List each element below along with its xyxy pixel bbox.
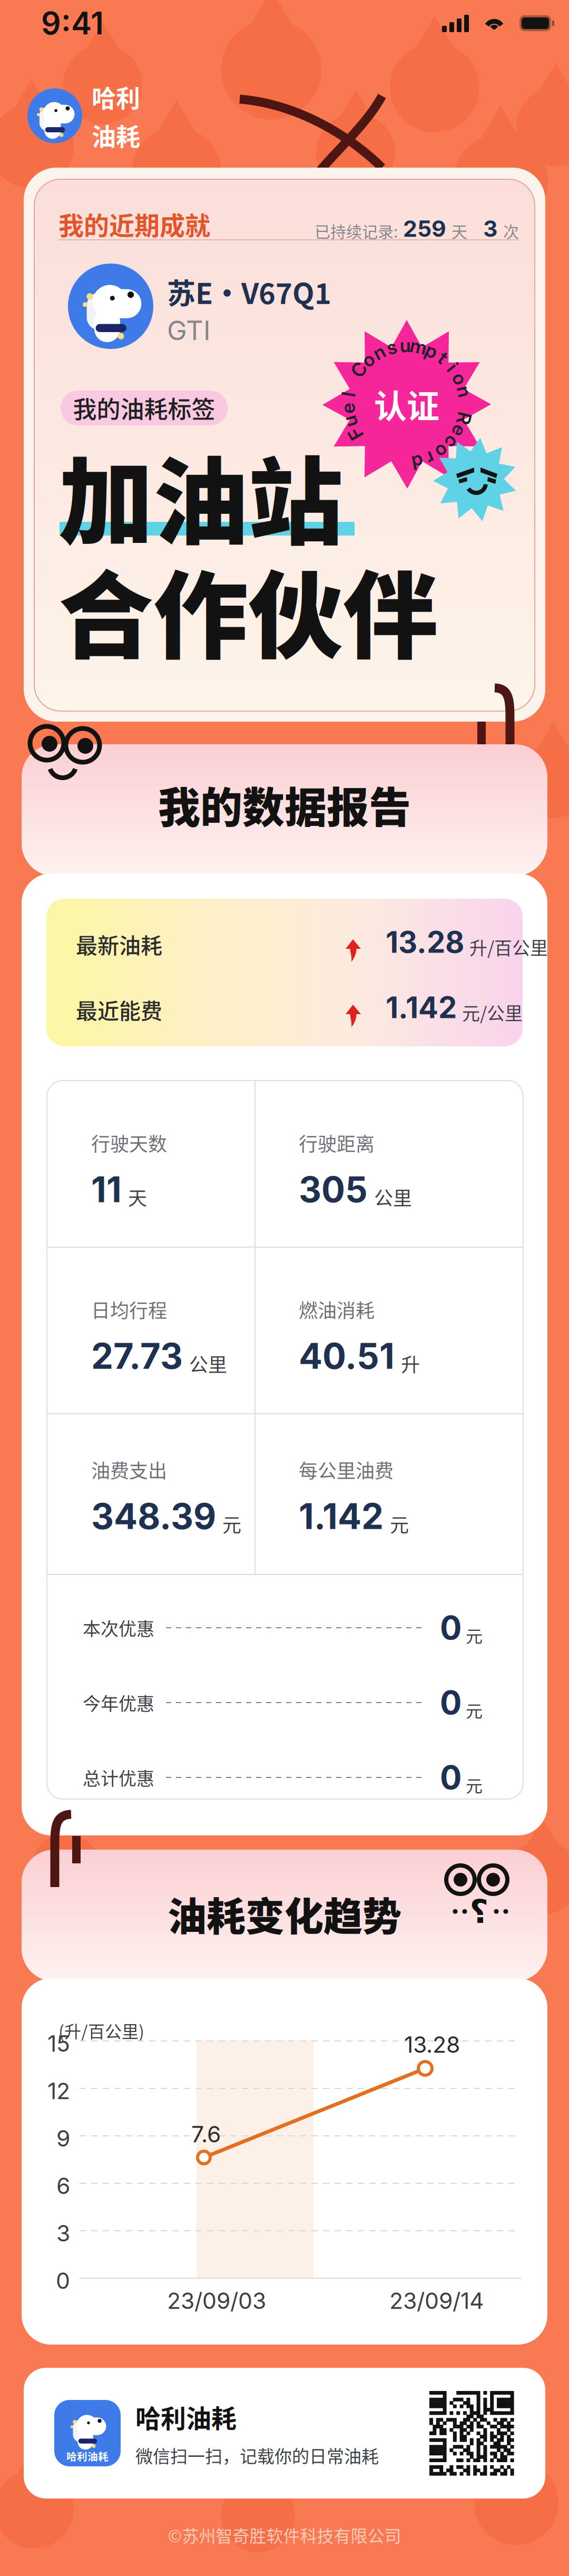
staticText: 元 (466, 1698, 483, 1722)
staticText: GTI (167, 314, 211, 347)
staticText: 3 (467, 215, 503, 242)
staticText: 公里 (189, 1350, 227, 1377)
staticText: n (459, 380, 470, 403)
staticText: 我的数据报告 (158, 774, 411, 835)
staticText: 40.51 (299, 1335, 395, 1377)
staticText: u (400, 334, 411, 357)
staticText: 13.28 (386, 924, 464, 960)
staticText: 3 (56, 2220, 70, 2247)
staticText: 升 (401, 1350, 420, 1377)
staticText: 油耗 (92, 117, 140, 152)
staticText: 13.28 (404, 2031, 460, 2058)
staticText: o (363, 348, 374, 371)
staticText: 行驶距离 (299, 1129, 375, 1157)
staticText: 升/百公里 (469, 934, 548, 960)
staticText: 0 (56, 2267, 70, 2294)
staticText: ©苏州智奇胜软件科技有限公司 (168, 2523, 401, 2547)
staticText: 259 (398, 215, 452, 242)
staticText: n (374, 341, 385, 364)
staticText: 0 (440, 1758, 462, 1797)
staticText: 哈利 (92, 79, 140, 114)
staticText: p (426, 339, 437, 362)
staticText: 燃油消耗 (299, 1296, 375, 1323)
staticText: ·· (492, 1894, 511, 1928)
staticText: 1.142 (386, 989, 457, 1025)
staticText: 油费支出 (91, 1456, 167, 1483)
staticText: m (410, 335, 427, 358)
staticText: 1.142 (299, 1495, 384, 1537)
staticText: (升/百公里) (58, 2018, 144, 2043)
staticText: 15 (47, 2030, 70, 2057)
staticText: e (343, 397, 353, 420)
staticText: 11 (91, 1168, 122, 1211)
staticText: 23/09/03 (167, 2287, 266, 2314)
staticText: 最新油耗 (76, 929, 162, 960)
staticText: 元/公里 (462, 999, 523, 1025)
staticText: 元 (390, 1510, 409, 1537)
staticText: 元 (222, 1510, 241, 1537)
staticText (464, 393, 468, 416)
staticText: 哈利油耗 (66, 2449, 109, 2464)
staticText: 行驶天数 (91, 1129, 167, 1157)
staticText: ·· (450, 1894, 469, 1928)
staticText: 总计优惠 (83, 1764, 154, 1790)
staticText: 日均行程 (91, 1296, 167, 1323)
staticText: 合作伙伴 (58, 540, 438, 678)
staticText: 认证 (374, 381, 439, 428)
staticText: l (346, 383, 351, 406)
staticText: 加油站 (58, 426, 343, 564)
staticText: 本次优惠 (83, 1615, 154, 1641)
staticText: R (458, 407, 470, 430)
staticText: 305 (299, 1168, 368, 1211)
staticText: 哈利油耗 (135, 2399, 237, 2435)
staticText: 每公里油费 (299, 1456, 394, 1483)
staticText (350, 370, 354, 393)
staticText: 今年优惠 (83, 1690, 154, 1716)
staticText: t (440, 346, 446, 369)
staticText: 12 (47, 2077, 70, 2105)
staticText: 0 (440, 1608, 462, 1647)
staticText: 公里 (374, 1183, 412, 1211)
staticText: C (352, 358, 366, 381)
staticText: 27.73 (91, 1335, 183, 1377)
staticText: 7.6 (191, 2121, 221, 2148)
staticText: 9 (56, 2125, 70, 2152)
staticText: i (450, 356, 455, 379)
staticText: r (427, 447, 434, 470)
staticText: 我的近期成就 (58, 206, 210, 242)
staticText: 次 (503, 219, 519, 242)
staticText: 348.39 (91, 1495, 216, 1537)
staticText: 微信扫一扫，记载你的日常油耗 (135, 2443, 379, 2468)
staticText: ؟ (469, 1893, 488, 1930)
staticText: 9:41 (41, 4, 104, 42)
staticText: 油耗变化趋势 (168, 1885, 401, 1942)
staticText: 最近能费 (76, 994, 162, 1025)
staticText: s (387, 336, 397, 359)
staticText: o (437, 440, 448, 463)
staticText: o (454, 367, 465, 390)
staticText: 0 (440, 1683, 462, 1722)
staticText: 天 (128, 1183, 147, 1211)
staticText: u (345, 410, 356, 433)
staticText: 元 (466, 1623, 483, 1647)
staticText: 苏E•V67Q1 (167, 271, 331, 312)
staticText: F (350, 422, 361, 445)
staticText: 天 (452, 219, 467, 242)
staticText: e (454, 419, 465, 442)
staticText: 元 (466, 1773, 483, 1797)
staticText: c (447, 431, 457, 454)
staticText: d (412, 451, 423, 474)
staticText: 23/09/14 (389, 2287, 484, 2314)
staticText: 已持续记录: (315, 219, 398, 242)
staticText: 6 (56, 2172, 70, 2199)
staticText: 我的油耗标签 (73, 391, 215, 425)
